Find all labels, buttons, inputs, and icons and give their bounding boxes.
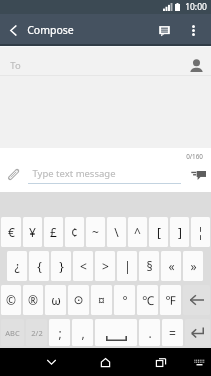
- button[interactable]: Back: [24, 348, 78, 376]
- staticText: [: [157, 224, 161, 240]
- button[interactable]: ]: [170, 217, 189, 247]
- button[interactable]: ¥: [23, 217, 42, 247]
- staticText: €: [8, 224, 15, 240]
- staticText: ^: [134, 224, 141, 240]
- button[interactable]: <: [73, 251, 93, 281]
- staticText: ©: [6, 292, 16, 308]
- staticText: <: [80, 258, 87, 274]
- button[interactable]: Backspace: [183, 285, 210, 315]
- button[interactable]: Recents: [133, 348, 188, 376]
- button[interactable]: ,: [72, 319, 93, 346]
- button[interactable]: Send: [185, 158, 211, 192]
- staticText: ABC: [5, 328, 20, 338]
- staticText: ]: [178, 224, 182, 240]
- button[interactable]: Add contact: [185, 55, 207, 75]
- button[interactable]: ⊙: [68, 285, 89, 315]
- button[interactable]: °: [114, 285, 135, 315]
- button[interactable]: {: [29, 251, 49, 281]
- staticText: ®: [28, 292, 38, 308]
- button[interactable]: [: [149, 217, 168, 247]
- button[interactable]: \: [107, 217, 126, 247]
- staticText: ω: [51, 292, 61, 308]
- staticText: {: [37, 258, 42, 274]
- staticText: ⊙: [73, 293, 84, 307]
- button[interactable]: ¿: [7, 251, 27, 281]
- button[interactable]: =: [162, 319, 183, 346]
- button[interactable]: ℃: [137, 285, 158, 315]
- button[interactable]: Home: [78, 348, 133, 376]
- button[interactable]: ¤: [91, 285, 112, 315]
- staticText: Compose: [27, 23, 74, 37]
- button[interactable]: |: [117, 251, 137, 281]
- staticText: ℃: [142, 292, 154, 308]
- staticText: ¦: [197, 224, 204, 240]
- staticText: «: [168, 258, 175, 274]
- button[interactable]: ®: [23, 285, 43, 315]
- staticText: 10:00: [185, 1, 207, 13]
- staticText: ¢: [71, 224, 78, 240]
- staticText: ¥: [29, 224, 36, 240]
- button[interactable]: Keyboard: [190, 348, 208, 376]
- button[interactable]: »: [183, 251, 203, 281]
- button[interactable]: Messages: [150, 14, 179, 46]
- staticText: >: [102, 258, 109, 274]
- staticText: .: [148, 325, 152, 341]
- button[interactable]: Space: [95, 319, 137, 346]
- button[interactable]: ω: [45, 285, 66, 315]
- button[interactable]: ^: [128, 217, 147, 247]
- staticText: §: [146, 258, 153, 274]
- button[interactable]: Back: [0, 14, 26, 46]
- button[interactable]: £: [44, 217, 63, 247]
- button[interactable]: «: [161, 251, 181, 281]
- button[interactable]: 2/2: [26, 319, 47, 346]
- staticText: =: [169, 325, 176, 341]
- button[interactable]: ;: [49, 319, 70, 346]
- staticText: »: [190, 258, 197, 274]
- staticText: 0/160: [186, 152, 203, 161]
- button[interactable]: Attach: [0, 158, 28, 192]
- button[interactable]: }: [51, 251, 71, 281]
- staticText: °: [122, 292, 128, 308]
- staticText: £: [50, 224, 57, 240]
- staticText: 2/2: [31, 328, 43, 338]
- staticText: |: [124, 258, 131, 274]
- staticText: \: [114, 224, 119, 240]
- staticText: To: [10, 59, 21, 72]
- button[interactable]: ©: [1, 285, 21, 315]
- staticText: ¤: [98, 292, 105, 308]
- button[interactable]: ABC: [1, 319, 24, 346]
- staticText: ¿: [14, 258, 20, 274]
- button[interactable]: ¢: [65, 217, 84, 247]
- button[interactable]: ¦: [191, 217, 210, 247]
- staticText: ~: [92, 224, 99, 240]
- staticText: ,: [81, 325, 85, 341]
- button[interactable]: €: [1, 217, 21, 247]
- button[interactable]: More options: [179, 14, 208, 46]
- button[interactable]: §: [139, 251, 159, 281]
- button[interactable]: >: [95, 251, 115, 281]
- staticText: Type text message: [32, 167, 116, 180]
- staticText: ℉: [165, 292, 176, 308]
- staticText: }: [59, 258, 64, 274]
- button[interactable]: Enter: [185, 319, 210, 346]
- button[interactable]: ℉: [160, 285, 181, 315]
- staticText: ;: [58, 325, 62, 341]
- button[interactable]: ~: [86, 217, 105, 247]
- button[interactable]: .: [139, 319, 160, 346]
